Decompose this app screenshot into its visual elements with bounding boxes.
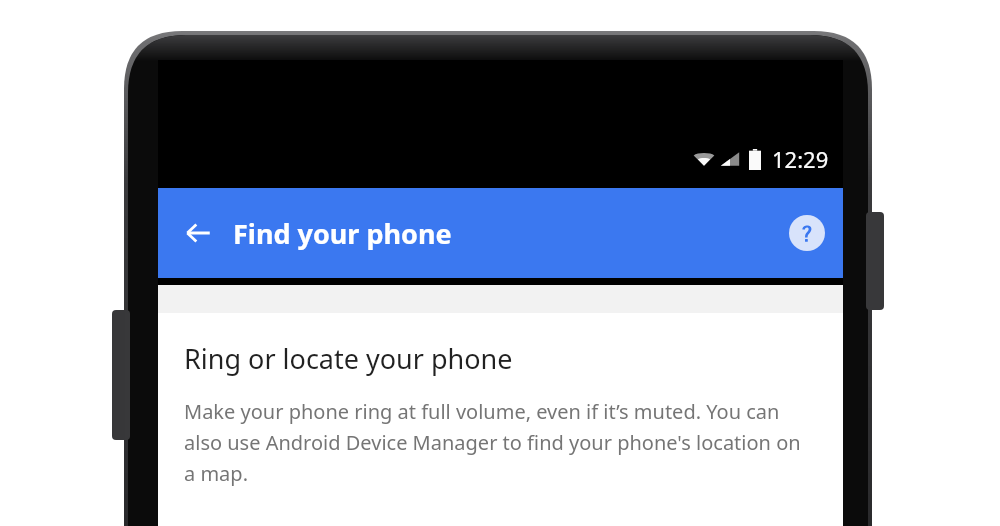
button[interactable]: Back bbox=[174, 209, 222, 257]
button[interactable]: Help bbox=[783, 209, 831, 257]
staticText: 12:29 bbox=[772, 144, 829, 174]
staticText: Ring or locate your phone bbox=[184, 340, 513, 377]
staticText: Find your phone bbox=[233, 215, 452, 252]
staticText: Make your phone ring at full volume, eve… bbox=[184, 398, 815, 487]
